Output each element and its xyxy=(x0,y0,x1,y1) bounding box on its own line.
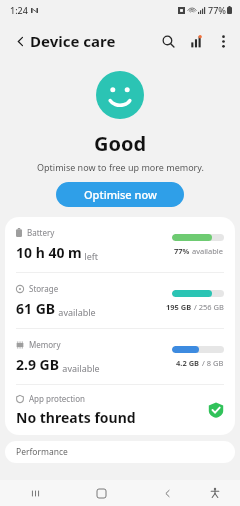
staticText: Memory xyxy=(29,339,61,350)
staticText: 10 h 40 m xyxy=(16,243,82,262)
staticText: Performance xyxy=(16,446,68,458)
button[interactable]: Home xyxy=(88,480,114,506)
button[interactable]: Accessibility xyxy=(202,480,228,506)
button[interactable]: Storage xyxy=(5,273,235,328)
staticText: Good xyxy=(94,130,147,157)
button[interactable]: Memory xyxy=(5,329,235,384)
staticText: available xyxy=(60,362,100,374)
button[interactable]: Performance xyxy=(5,441,235,463)
staticText: / 256 GB xyxy=(192,302,224,312)
button[interactable]: Battery xyxy=(5,217,235,272)
button[interactable]: Optimise now xyxy=(56,182,184,207)
staticText: 77% xyxy=(208,4,226,16)
staticText: 2.9 GB xyxy=(16,355,60,374)
staticText: No threats found xyxy=(16,408,136,427)
button[interactable]: Back xyxy=(6,27,34,55)
button[interactable]: Statistics xyxy=(182,27,210,55)
staticText: 4.2 GB xyxy=(176,358,200,368)
staticText: / 8 GB xyxy=(200,358,224,368)
staticText: Optimise now xyxy=(84,187,157,202)
staticText: available xyxy=(56,306,96,318)
staticText: 1:24 xyxy=(10,4,28,16)
staticText: left xyxy=(82,250,99,262)
staticText: Battery xyxy=(27,227,55,238)
button[interactable]: More options xyxy=(210,28,236,54)
staticText: App protection xyxy=(29,393,85,404)
staticText: Storage xyxy=(29,283,59,294)
staticText: Optimise now to free up more memory. xyxy=(37,161,204,173)
staticText: available xyxy=(190,246,224,256)
button[interactable]: Back xyxy=(154,480,180,506)
staticText: 61 GB xyxy=(16,299,56,318)
staticText: 195 GB xyxy=(166,302,192,312)
button[interactable]: Recents xyxy=(22,480,48,506)
staticText: 77% xyxy=(174,246,190,256)
staticText: Device care xyxy=(30,31,116,51)
button[interactable]: App protection xyxy=(5,385,235,435)
button[interactable]: Search xyxy=(154,27,182,55)
